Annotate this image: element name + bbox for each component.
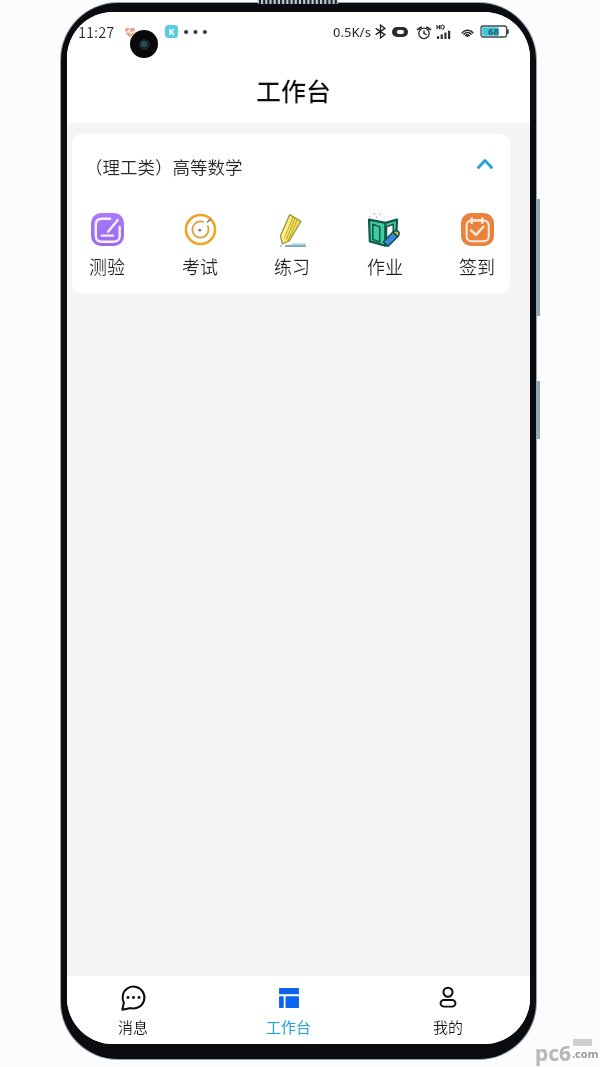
staticText: .com [572,1046,599,1061]
button[interactable]: 考试 [181,213,219,279]
staticText: 考试 [182,253,218,279]
button[interactable]: 我的 [400,986,496,1038]
staticText: 68 [488,25,499,38]
staticText: （理工类）高等数学 [85,154,243,179]
staticText: 工作台 [266,1016,312,1038]
button[interactable]: （理工类）高等数学 [72,134,510,198]
button[interactable]: 测验 [88,213,126,279]
staticText: 工作台 [256,72,332,108]
staticText: 测验 [89,253,125,279]
staticText: 11:27 [78,21,115,42]
staticText: K [169,26,175,37]
button[interactable]: 签到 [458,213,496,279]
staticText: 作业 [367,253,403,279]
staticText: 签到 [459,253,495,279]
staticText: 我的 [433,1016,464,1038]
button[interactable]: 练习 [273,213,311,279]
staticText: pc6 [535,1039,572,1067]
other: Collapse [473,154,497,178]
staticText: 0.5K/s [333,23,371,41]
staticText: 消息 [118,1016,149,1038]
button[interactable]: 工作台 [241,986,337,1038]
button[interactable]: 作业 [366,213,404,279]
button[interactable]: 消息 [85,986,181,1038]
staticText: 练习 [274,253,310,279]
